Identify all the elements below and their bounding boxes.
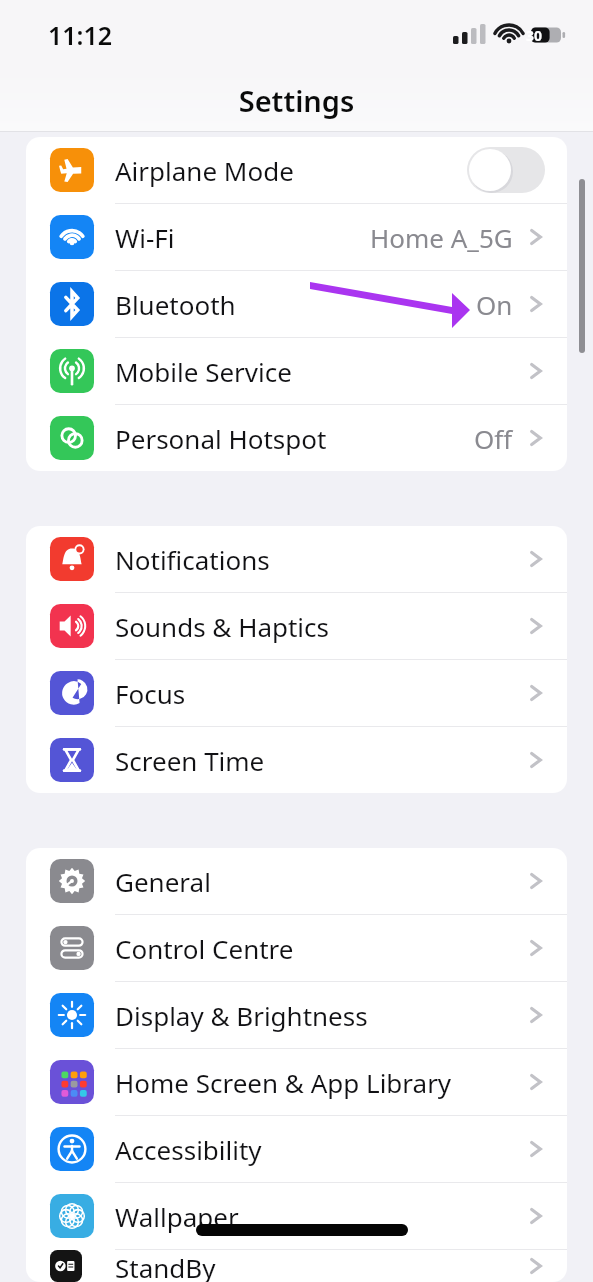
staticText: Personal Hotspot [115, 421, 327, 456]
button[interactable]: Airplane Mode [26, 137, 567, 203]
button[interactable]: Bluetooth [26, 271, 567, 337]
staticText: Airplane Mode [115, 153, 294, 188]
staticText: Bluetooth [115, 287, 236, 322]
staticText: Control Centre [115, 931, 294, 966]
staticText: Settings [0, 81, 593, 120]
button[interactable]: General [26, 848, 567, 914]
staticText: Mobile Service [115, 354, 292, 389]
button[interactable]: Focus [26, 660, 567, 726]
staticText: Off [474, 421, 513, 456]
staticText: Notifications [115, 542, 270, 577]
button[interactable]: Sounds & Haptics [26, 593, 567, 659]
button[interactable]: Airplane Mode toggle [467, 147, 545, 193]
staticText: Accessibility [115, 1132, 262, 1167]
staticText: Screen Time [115, 743, 265, 778]
button[interactable]: StandBy [26, 1250, 567, 1282]
staticText: Home A_5G [370, 220, 513, 255]
staticText: Sounds & Haptics [115, 609, 330, 644]
button[interactable]: Display & Brightness [26, 982, 567, 1048]
staticText: Focus [115, 676, 186, 711]
button[interactable]: Mobile Service [26, 338, 567, 404]
button[interactable]: Wi-Fi [26, 204, 567, 270]
staticText: General [115, 864, 211, 899]
staticText: 11:12 [48, 18, 113, 52]
staticText: 30 [526, 26, 543, 45]
button[interactable]: Accessibility [26, 1116, 567, 1182]
button[interactable]: Wallpaper [26, 1183, 567, 1249]
button[interactable]: Personal Hotspot [26, 405, 567, 471]
staticText: Wi-Fi [115, 220, 175, 255]
staticText: Home Screen & App Library [115, 1065, 452, 1100]
button[interactable]: Screen Time [26, 727, 567, 793]
staticText: On [476, 287, 513, 322]
button[interactable]: Control Centre [26, 915, 567, 981]
staticText: Display & Brightness [115, 998, 368, 1033]
staticText: StandBy [115, 1250, 216, 1282]
button[interactable]: Notifications [26, 526, 567, 592]
button[interactable]: Home Screen & App Library [26, 1049, 567, 1115]
staticText: Wallpaper [115, 1199, 239, 1234]
